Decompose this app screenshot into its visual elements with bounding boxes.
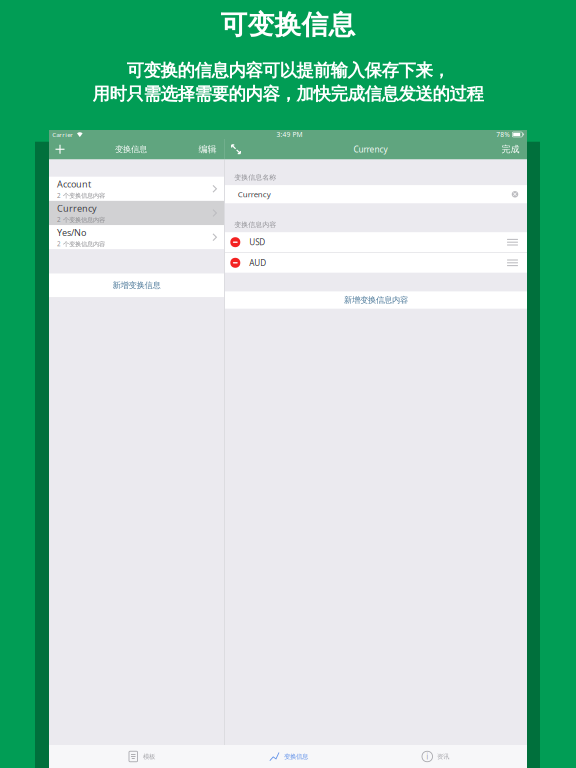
staticText: Account xyxy=(57,178,91,190)
staticText: 变换信息内容 xyxy=(234,220,276,229)
staticText: 2 个变换信息内容 xyxy=(57,191,105,200)
staticText: 变换信息 xyxy=(115,144,147,154)
staticText: 模板 xyxy=(143,752,155,761)
staticText: 用时只需选择需要的内容，加快完成信息发送的过程 xyxy=(92,83,483,105)
staticText: 变换信息 xyxy=(284,752,308,761)
staticText: Currency xyxy=(238,189,271,200)
staticText: Currency xyxy=(353,144,387,155)
staticText: 变换信息名称 xyxy=(234,173,276,182)
button[interactable]: 变换信息 xyxy=(233,745,343,768)
staticText: i xyxy=(426,751,428,762)
button[interactable]: Expand xyxy=(225,139,247,159)
button[interactable]: Account xyxy=(49,177,224,201)
button[interactable]: 新增变换信息 xyxy=(49,273,224,297)
staticText: Yes/No xyxy=(57,226,86,239)
button[interactable]: USD xyxy=(225,232,527,252)
button[interactable]: 新增变换信息内容 xyxy=(225,291,527,309)
button[interactable]: Clear xyxy=(508,187,522,201)
staticText: 编辑 xyxy=(198,143,216,155)
staticText: 78% xyxy=(496,130,510,139)
button[interactable]: Yes/No xyxy=(49,225,224,249)
staticText: 资讯 xyxy=(437,752,449,761)
staticText: 可变换的信息内容可以提前输入保存下来， xyxy=(126,60,449,81)
staticText: 2 个变换信息内容 xyxy=(57,240,105,248)
staticText: 新增变换信息内容 xyxy=(344,295,408,305)
staticText: Carrier xyxy=(52,130,73,139)
staticText: 新增变换信息 xyxy=(112,280,160,290)
button[interactable]: 模板 xyxy=(86,745,196,768)
button[interactable]: 编辑 xyxy=(191,139,224,159)
button[interactable]: AUD xyxy=(225,253,527,273)
button[interactable]: 完成 xyxy=(494,139,527,159)
staticText: AUD xyxy=(249,257,266,268)
button[interactable]: i xyxy=(380,745,490,768)
staticText: 可变换信息 xyxy=(220,8,355,42)
staticText: Currency xyxy=(57,202,97,214)
staticText: USD xyxy=(249,237,265,248)
staticText: 2 个变换信息内容 xyxy=(57,215,105,224)
staticText: 3:49 PM xyxy=(277,130,303,139)
button[interactable]: Add xyxy=(49,139,71,159)
button[interactable]: Currency xyxy=(49,201,224,225)
staticText: 完成 xyxy=(501,143,519,155)
